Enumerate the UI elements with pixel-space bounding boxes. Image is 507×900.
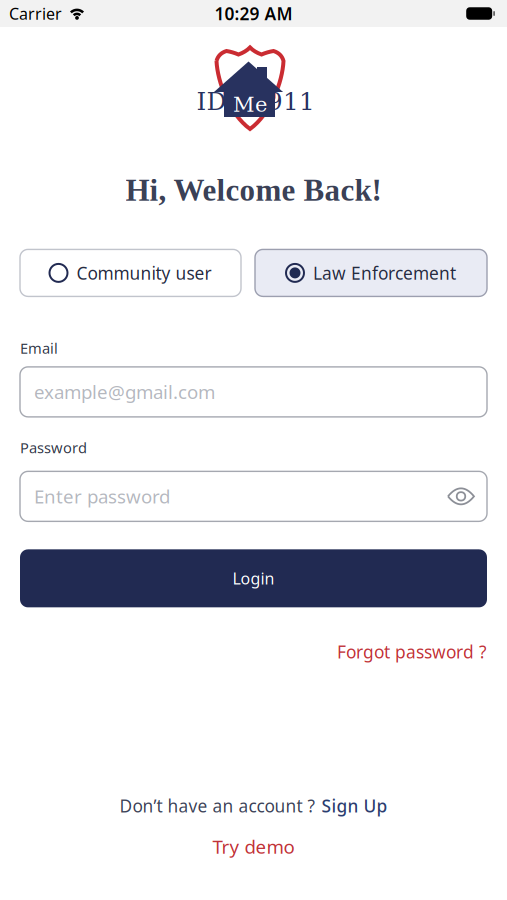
staticText: Sign Up — [321, 794, 387, 817]
staticText: Hi, Welcome Back! — [125, 173, 381, 207]
staticText: Forgot password ? — [337, 640, 487, 663]
staticText: ID — [196, 87, 226, 116]
button[interactable]: Show password — [447, 485, 475, 507]
button[interactable]: Community user — [20, 249, 241, 296]
button[interactable]: Forgot password ? — [337, 640, 487, 663]
staticText: example@gmail.com — [34, 379, 215, 404]
staticText: Password — [20, 438, 87, 457]
button[interactable]: Login — [20, 549, 487, 607]
button[interactable]: Sign Up — [321, 794, 387, 817]
staticText: Enter password — [34, 484, 170, 509]
staticText: 911 — [267, 87, 315, 116]
staticText: 10:29 AM — [214, 2, 292, 25]
button[interactable]: Law Enforcement — [255, 249, 487, 296]
staticText: Carrier — [9, 3, 62, 24]
button[interactable]: Try demo — [212, 834, 294, 859]
staticText: Email — [20, 338, 58, 358]
staticText: Don’t have an account ? — [119, 794, 315, 817]
staticText: Community user — [76, 261, 211, 284]
staticText: Me — [233, 92, 267, 117]
staticText: Law Enforcement — [313, 261, 456, 284]
staticText: Login — [232, 568, 274, 589]
staticText: Try demo — [212, 834, 294, 859]
